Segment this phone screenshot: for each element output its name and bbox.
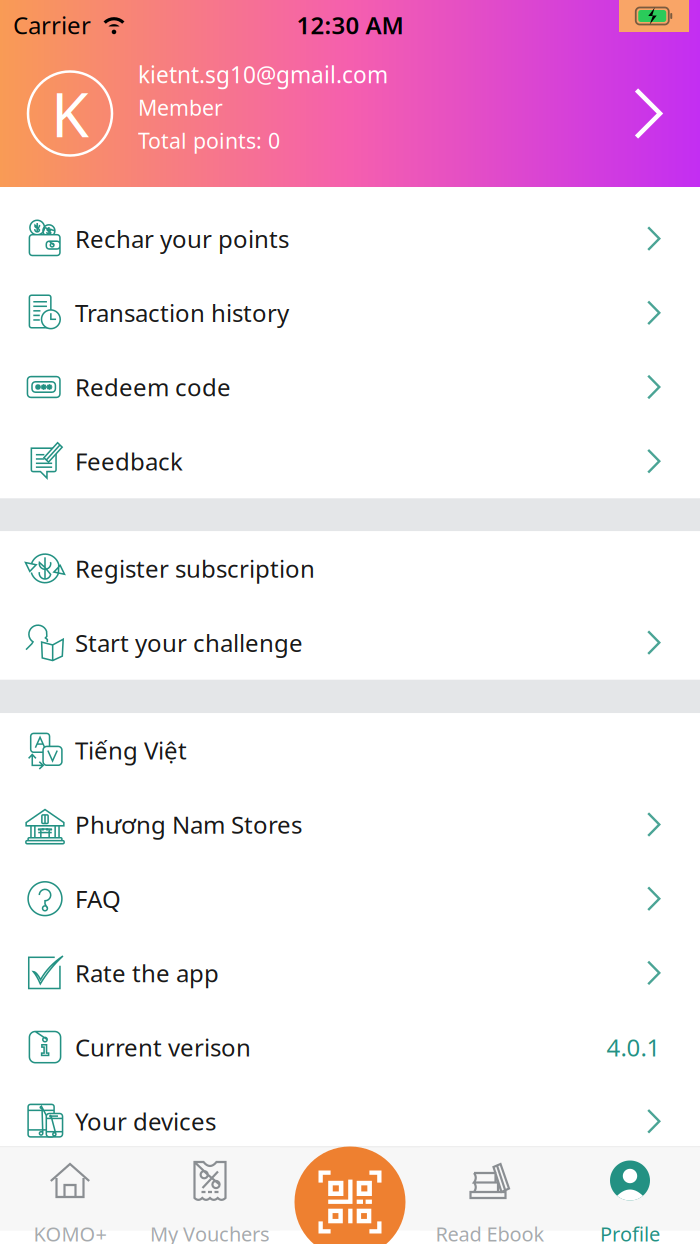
button[interactable]: Current verison — [0, 1010, 700, 1084]
staticText: Phương Nam Stores — [75, 809, 302, 840]
staticText: Total points: 0 — [138, 126, 280, 155]
button[interactable]: K — [0, 40, 700, 187]
button[interactable]: Your devices — [0, 1084, 700, 1158]
staticText: Rate the app — [75, 957, 219, 989]
button[interactable]: Read Ebook — [420, 1147, 560, 1230]
staticText: Rechar your points — [75, 223, 289, 255]
staticText: FAQ — [75, 883, 121, 915]
staticText: Your devices — [75, 1105, 216, 1137]
button[interactable]: Redeem code — [0, 350, 700, 424]
staticText: Member — [138, 93, 223, 122]
staticText: 12:30 AM — [296, 9, 403, 41]
staticText: Start your challenge — [75, 627, 303, 659]
staticText: Profile — [600, 1220, 660, 1244]
staticText: Carrier — [13, 9, 91, 41]
staticText: Feedback — [75, 445, 183, 477]
button[interactable]: Rechar your points — [0, 201, 700, 276]
staticText: Register subscription — [75, 552, 315, 584]
staticText: My Vouchers — [150, 1220, 270, 1244]
staticText: kietnt.sg10@gmail.com — [138, 59, 388, 89]
staticText: KOMO+ — [33, 1220, 106, 1244]
button[interactable]: Scan QR code — [294, 1146, 405, 1244]
button[interactable]: Transaction history — [0, 276, 700, 350]
button[interactable]: FAQ — [0, 862, 700, 936]
button[interactable]: My Vouchers — [140, 1147, 280, 1230]
staticText: Transaction history — [75, 297, 289, 329]
button[interactable]: Register subscription — [0, 531, 700, 605]
button[interactable]: Rate the app — [0, 936, 700, 1010]
button[interactable]: Profile — [560, 1147, 700, 1230]
button[interactable]: Start your challenge — [0, 605, 700, 680]
staticText: K — [51, 73, 89, 154]
staticText: Tiếng Việt — [75, 734, 187, 766]
button[interactable]: Phương Nam Stores — [0, 787, 700, 862]
button[interactable]: Feedback — [0, 424, 700, 498]
staticText: Read Ebook — [435, 1220, 544, 1244]
staticText: Current verison — [75, 1031, 251, 1063]
staticText: 4.0.1 — [606, 1031, 660, 1063]
button[interactable]: Tiếng Việt — [0, 713, 700, 787]
staticText: Redeem code — [75, 371, 231, 403]
button[interactable]: KOMO+ — [0, 1147, 140, 1230]
